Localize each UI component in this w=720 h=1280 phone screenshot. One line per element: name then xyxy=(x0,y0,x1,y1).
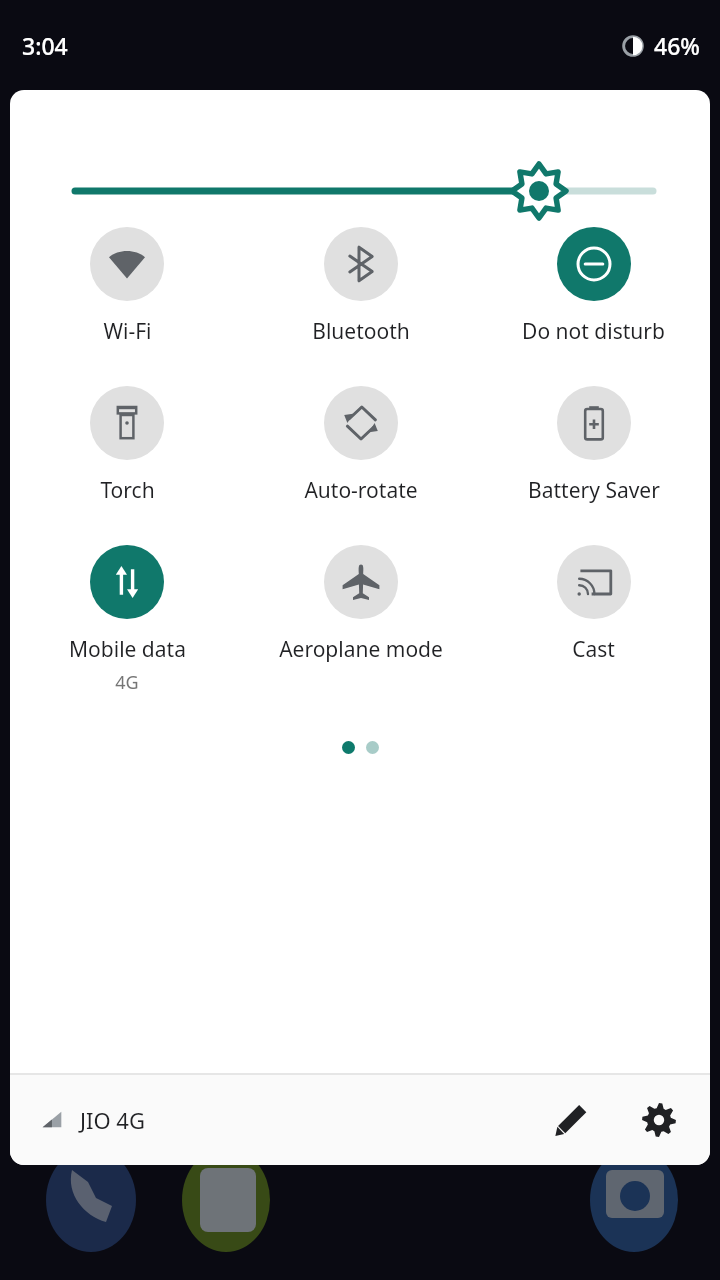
staticText: 3:04 xyxy=(22,30,68,61)
staticText: Wi-Fi xyxy=(103,317,152,346)
button[interactable]: Edit xyxy=(536,1085,606,1155)
button[interactable]: Do not disturb xyxy=(477,227,710,346)
button[interactable]: Settings xyxy=(624,1085,694,1155)
button[interactable]: Torch xyxy=(10,386,244,505)
staticText: 46% xyxy=(654,30,700,61)
staticText: Auto-rotate xyxy=(304,476,418,505)
button[interactable]: Bluetooth xyxy=(244,227,477,346)
staticText: Aeroplane mode xyxy=(279,635,443,664)
staticText: Cast xyxy=(572,635,615,664)
button[interactable]: Battery Saver xyxy=(477,386,710,505)
button[interactable]: JIO 4G xyxy=(10,1075,157,1165)
staticText: JIO 4G xyxy=(80,1105,145,1135)
button[interactable]: Mobile data xyxy=(10,545,244,695)
staticText: Do not disturb xyxy=(522,317,665,346)
button[interactable]: Auto-rotate xyxy=(244,386,477,505)
staticText: Torch xyxy=(100,476,155,505)
staticText: Bluetooth xyxy=(312,317,410,346)
staticText: Mobile data xyxy=(69,635,186,664)
button[interactable]: Cast xyxy=(477,545,710,664)
staticText: 4G xyxy=(115,670,139,695)
staticText: Battery Saver xyxy=(528,476,660,505)
button[interactable]: Brightness xyxy=(10,91,710,201)
button[interactable]: Wi-Fi xyxy=(10,227,244,346)
button[interactable]: Aeroplane mode xyxy=(244,545,477,664)
